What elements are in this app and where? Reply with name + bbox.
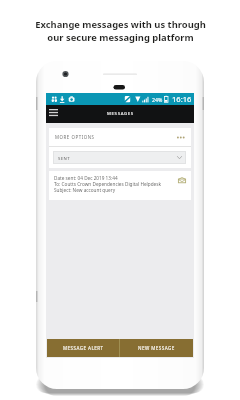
staticText: NEW MESSAGE <box>138 345 175 351</box>
staticText: To: Coutts Crown Dependencies Digital He… <box>54 181 161 187</box>
staticText: Subject: New account query <box>54 187 116 193</box>
button[interactable]: Date sent: 04 Dec 2019 13:44 <box>49 171 191 200</box>
button[interactable]: MESSAGE ALERT <box>47 339 119 357</box>
button[interactable]: NEW MESSAGE <box>120 339 193 357</box>
button[interactable]: SENT <box>53 151 186 164</box>
staticText: Exchange messages with us through <box>35 18 206 31</box>
staticText: SENT <box>58 155 71 161</box>
button[interactable]: Open message <box>178 177 186 183</box>
staticText: Date sent: 04 Dec 2019 13:44 <box>54 175 118 181</box>
staticText: MESSAGES <box>107 110 134 116</box>
button[interactable]: Open navigation menu <box>46 105 61 123</box>
staticText: MORE OPTIONS <box>55 134 95 140</box>
staticText: 24% <box>152 96 163 103</box>
button[interactable]: MORE OPTIONS <box>49 128 191 146</box>
staticText: our secure messaging platform <box>47 31 194 44</box>
staticText: MESSAGE ALERT <box>63 345 104 351</box>
button[interactable]: More options <box>175 132 187 142</box>
staticText: 16:16 <box>172 94 192 104</box>
